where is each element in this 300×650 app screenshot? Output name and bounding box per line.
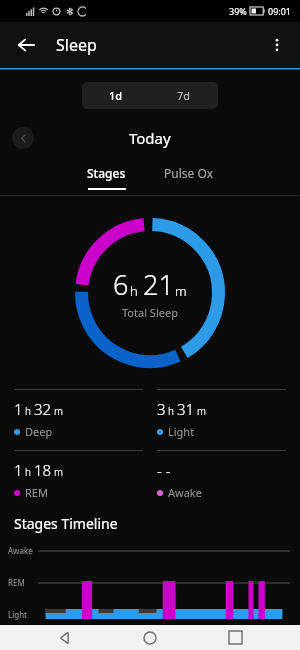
staticText: 18 [34, 460, 52, 480]
staticText: h [25, 404, 31, 418]
button[interactable]: 1d [82, 82, 150, 109]
button[interactable]: More options [260, 28, 294, 62]
staticText: REM [8, 577, 25, 588]
staticText: Deep [25, 424, 53, 439]
staticText: 6 [113, 266, 129, 303]
staticText: Sleep [56, 34, 97, 56]
staticText: Awake [168, 485, 202, 500]
button[interactable]: Recent apps [215, 625, 255, 650]
staticText: 1 [14, 399, 23, 419]
staticText: 39% [229, 5, 247, 17]
staticText: Pulse Ox [164, 165, 214, 181]
button[interactable]: 7d [150, 82, 218, 109]
staticText: Stages Timeline [14, 514, 118, 533]
staticText: 3 [157, 399, 166, 419]
staticText: Awake [8, 545, 33, 556]
button[interactable]: 3 [157, 389, 286, 439]
button[interactable]: Previous day [12, 127, 34, 149]
staticText: Stages [87, 165, 126, 181]
staticText: h [168, 404, 174, 418]
staticText: m [54, 465, 63, 479]
button[interactable]: - - [157, 450, 286, 500]
staticText: h [130, 282, 138, 300]
button[interactable]: 1 [14, 389, 143, 439]
button[interactable]: Back [45, 625, 85, 650]
staticText: 1d [109, 88, 123, 103]
staticText: 7d [177, 88, 191, 103]
staticText: m [197, 404, 206, 418]
button[interactable]: Back [8, 27, 44, 63]
staticText: - - [157, 460, 171, 480]
button[interactable]: Stages [77, 165, 136, 190]
staticText: 1 [14, 460, 23, 480]
staticText: Light [168, 424, 195, 439]
staticText: 09:01 [268, 5, 292, 17]
staticText: 32 [34, 399, 52, 419]
staticText: 21 [143, 266, 174, 303]
staticText: 31 [177, 399, 195, 419]
staticText: REM [25, 485, 48, 500]
button[interactable]: 1 [14, 450, 143, 500]
button[interactable]: Home [130, 625, 170, 650]
staticText: Today [129, 128, 171, 148]
staticText: m [175, 282, 187, 300]
staticText: Light [8, 609, 28, 620]
staticText: h [25, 465, 31, 479]
staticText: Total Sleep [122, 305, 178, 320]
button[interactable]: Pulse Ox [154, 165, 224, 181]
staticText: m [54, 404, 63, 418]
